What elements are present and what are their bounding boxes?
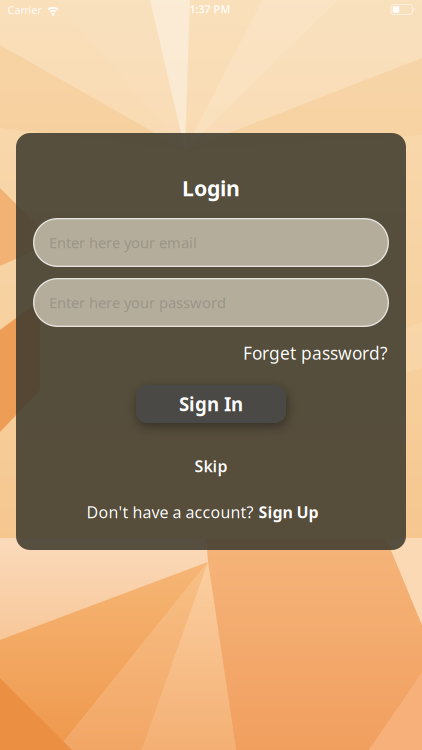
- staticText: Don't have a account?: [86, 501, 253, 523]
- staticText: Forget password?: [243, 341, 388, 364]
- staticText: Enter here your password: [49, 293, 226, 312]
- staticText: Sign Up: [258, 501, 318, 523]
- button[interactable]: Forget password?: [243, 341, 388, 364]
- staticText: Login: [182, 174, 240, 202]
- staticText: Sign In: [179, 392, 243, 416]
- staticText: Carrier: [7, 3, 41, 17]
- button[interactable]: Skip: [194, 455, 227, 477]
- staticText: Enter here your email: [49, 233, 197, 252]
- button[interactable]: Enter here your password: [33, 278, 389, 327]
- button[interactable]: Sign In: [136, 385, 286, 423]
- button[interactable]: Sign Up: [258, 501, 318, 523]
- staticText: Skip: [194, 455, 227, 477]
- staticText: 1:37 PM: [189, 2, 230, 16]
- button[interactable]: Enter here your email: [33, 218, 389, 267]
